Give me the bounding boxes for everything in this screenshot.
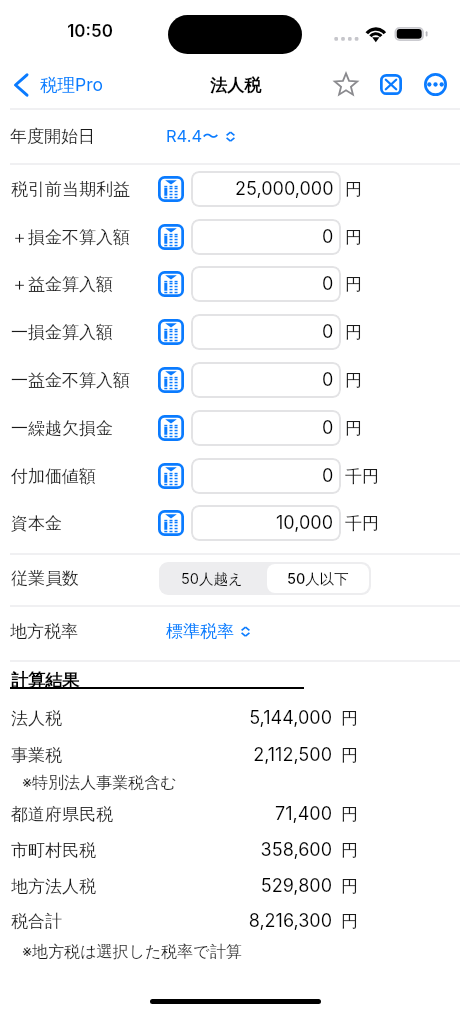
staticText: 50人以下 — [287, 570, 349, 588]
button[interactable]: 25,000,000 — [191, 171, 341, 207]
button[interactable]: 0 — [191, 458, 341, 494]
staticText: 標準税率 — [166, 621, 234, 642]
staticText: 付加価値額 — [11, 466, 96, 487]
staticText: 0 — [322, 321, 334, 343]
button[interactable]: Calculator — [158, 510, 184, 536]
button[interactable]: Calculator — [158, 271, 184, 297]
staticText: 法人税 — [210, 75, 261, 96]
staticText: 千円 — [345, 466, 379, 487]
staticText: 円 — [341, 708, 358, 729]
staticText: 529,800 — [180, 875, 332, 897]
button[interactable]: 0 — [191, 266, 341, 302]
button[interactable]: Calculator — [158, 367, 184, 393]
staticText: 25,000,000 — [235, 178, 334, 200]
staticText: ＋損金不算入額 — [11, 227, 130, 248]
staticText: 地方法人税 — [11, 876, 96, 897]
staticText: 50人越え — [181, 570, 243, 588]
staticText: 0 — [322, 465, 334, 487]
staticText: 都道府県民税 — [11, 804, 113, 825]
staticText: 地方税率 — [10, 621, 78, 642]
button[interactable]: Favorite — [329, 67, 363, 101]
staticText: 10:50 — [60, 21, 120, 42]
staticText: 0 — [322, 273, 334, 295]
staticText: 5,144,000 — [180, 707, 332, 729]
button[interactable]: 0 — [191, 410, 341, 446]
button[interactable]: 税理Pro — [9, 66, 103, 104]
staticText: 円 — [345, 179, 362, 200]
staticText: 円 — [341, 911, 358, 932]
staticText: ＋益金算入額 — [11, 274, 113, 295]
staticText: 0 — [322, 226, 334, 248]
staticText: 円 — [345, 227, 362, 248]
staticText: 一益金不算入額 — [11, 370, 130, 391]
staticText: 事業税 — [11, 745, 62, 766]
button[interactable]: Calculator — [158, 224, 184, 250]
staticText: 税理Pro — [40, 74, 103, 96]
staticText: 0 — [322, 369, 334, 391]
staticText: 71,400 — [180, 803, 332, 825]
button[interactable]: Clear — [374, 67, 408, 101]
staticText: 市町村民税 — [11, 840, 96, 861]
button[interactable]: Calculator — [158, 176, 184, 202]
button[interactable]: 50人以下 — [267, 564, 369, 593]
button[interactable]: Calculator — [158, 463, 184, 489]
button[interactable]: More options — [418, 67, 452, 101]
staticText: 円 — [345, 322, 362, 343]
staticText: 資本金 — [11, 513, 62, 534]
staticText: 0 — [322, 417, 334, 439]
staticText: 従業員数 — [11, 568, 79, 589]
staticText: 358,600 — [180, 839, 332, 861]
button[interactable]: 10,000 — [191, 505, 341, 541]
staticText: 円 — [345, 418, 362, 439]
staticText: 法人税 — [11, 708, 62, 729]
button[interactable]: Calculator — [158, 415, 184, 441]
staticText: 年度開始日 — [10, 126, 95, 147]
staticText: 2,112,500 — [180, 744, 332, 766]
button[interactable]: 0 — [191, 314, 341, 350]
staticText: 円 — [341, 840, 358, 861]
staticText: 税引前当期利益 — [11, 179, 130, 200]
button[interactable]: 0 — [191, 362, 341, 398]
staticText: 一繰越欠損金 — [11, 418, 113, 439]
button[interactable]: 50人越え — [159, 562, 265, 595]
staticText: 千円 — [345, 513, 379, 534]
button[interactable]: 年度開始日 — [0, 117, 471, 155]
staticText: 円 — [341, 745, 358, 766]
staticText: 円 — [345, 370, 362, 391]
button[interactable]: Calculator — [158, 319, 184, 345]
staticText: ※特別法人事業税含む — [22, 772, 177, 792]
button[interactable]: 地方税率 — [0, 611, 471, 651]
staticText: 円 — [341, 876, 358, 897]
staticText: 円 — [341, 804, 358, 825]
staticText: ※地方税は選択した税率で計算 — [22, 941, 242, 961]
staticText: 10,000 — [276, 512, 334, 534]
staticText: R4.4〜 — [166, 126, 219, 147]
staticText: 一損金算入額 — [11, 322, 113, 343]
staticText: 8,216,300 — [180, 910, 332, 932]
staticText: 円 — [345, 274, 362, 295]
button[interactable]: 0 — [191, 219, 341, 255]
staticText: 計算結果 — [11, 670, 79, 691]
staticText: 税合計 — [11, 911, 62, 932]
